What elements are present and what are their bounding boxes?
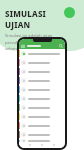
button[interactable]: Badge	[64, 7, 75, 18]
button[interactable]	[19, 85, 65, 94]
button[interactable]	[19, 130, 65, 139]
button[interactable]	[19, 58, 65, 67]
button[interactable]	[19, 94, 65, 103]
button[interactable]	[19, 103, 65, 112]
button[interactable]	[19, 112, 65, 121]
staticText: Simulasi ini adalah ujian percubaan bagi…	[5, 33, 66, 51]
button[interactable]: Search	[59, 44, 63, 48]
button[interactable]	[19, 139, 65, 142]
staticText: SIMULASI UJIAN	[5, 8, 66, 30]
button[interactable]	[19, 76, 65, 85]
button[interactable]	[19, 49, 65, 58]
button[interactable]: Menu	[21, 44, 25, 48]
button[interactable]	[19, 121, 65, 130]
button[interactable]	[19, 67, 65, 76]
